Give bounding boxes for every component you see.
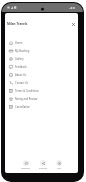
staticText: Rating and Review (15, 97, 38, 101)
staticText: Terms & Conditions (15, 89, 39, 93)
button[interactable]: Sharing (39, 160, 47, 170)
staticText: Gallery (15, 57, 24, 61)
button[interactable]: Cancellation (5, 103, 78, 111)
button[interactable]: Contact Us (5, 79, 78, 87)
staticText: Feedback (15, 65, 27, 69)
button[interactable]: About Us (5, 71, 78, 79)
staticText: Sharing (39, 167, 47, 170)
button[interactable]: Rating and Review (5, 95, 78, 103)
button[interactable]: Booking (21, 160, 30, 170)
staticText: Call (57, 167, 61, 170)
staticText: Cancellation (15, 105, 30, 109)
staticText: Contact Us (15, 81, 29, 85)
staticText: Milan Travels (7, 22, 28, 26)
button[interactable]: Close (69, 20, 77, 28)
staticText: My Booking (15, 49, 30, 53)
button[interactable]: Terms & Conditions (5, 87, 78, 95)
staticText: About Us (15, 73, 27, 77)
button[interactable]: Call (56, 160, 62, 170)
button[interactable]: Gallery (5, 55, 78, 63)
button[interactable]: Home (5, 39, 78, 47)
button[interactable]: Feedback (5, 63, 78, 71)
button[interactable]: My Booking (5, 47, 78, 55)
staticText: Home (15, 41, 23, 45)
staticText: Booking (21, 167, 30, 170)
